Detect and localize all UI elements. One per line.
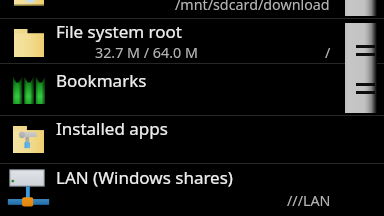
staticText: / <box>325 43 331 62</box>
button[interactable]: /mnt/sdcard/download <box>0 0 384 18</box>
staticText: Bookmarks <box>56 69 147 92</box>
other: Scroll bar <box>345 23 377 113</box>
staticText: ///LAN <box>287 191 331 210</box>
staticText: 32.7 M / 64.0 M <box>95 43 198 62</box>
button[interactable]: Installed apps <box>0 116 384 163</box>
staticText: Installed apps <box>56 117 168 140</box>
button[interactable]: LAN (Windows shares) <box>0 164 384 216</box>
staticText: File system root <box>56 20 182 43</box>
button[interactable]: Bookmarks <box>0 64 384 115</box>
staticText: /mnt/sdcard/download <box>175 0 330 13</box>
button[interactable]: File system root <box>0 19 384 63</box>
staticText: LAN (Windows shares) <box>56 166 233 189</box>
